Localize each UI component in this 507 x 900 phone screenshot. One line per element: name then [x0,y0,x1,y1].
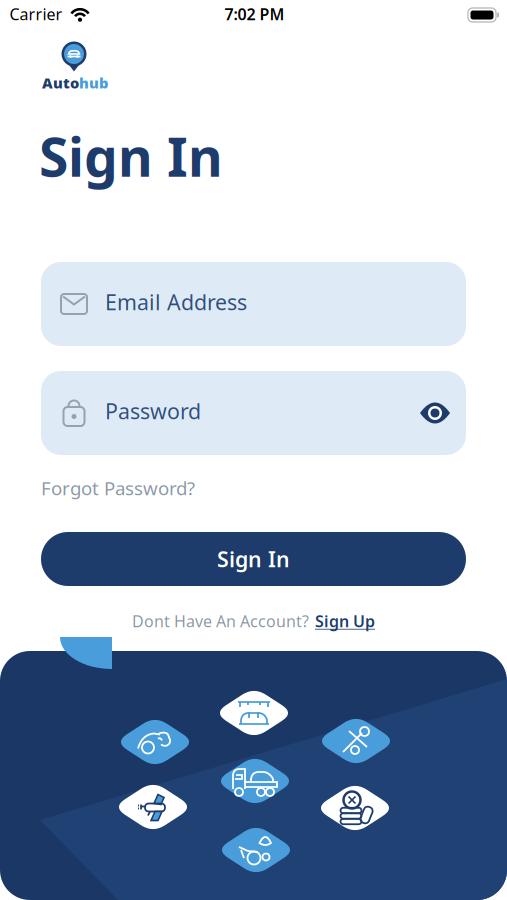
staticText: Sign Up [315,610,375,632]
staticText: Forgot Password? [41,476,195,500]
staticText: 7:02 PM [224,3,284,25]
staticText: Sign In [217,545,290,573]
staticText: Carrier [9,3,62,25]
staticText: Auto [42,73,79,92]
staticText: Dont Have An Account? [132,610,309,632]
staticText: Password [105,397,201,425]
button[interactable]: Email Address [41,262,466,346]
button[interactable]: Password [41,371,466,455]
button[interactable]: Show Password [413,391,457,435]
staticText: Email Address [105,288,247,316]
staticText: hub [79,73,108,92]
button[interactable]: Sign In [41,532,466,586]
staticText: Sign In [39,121,223,191]
button[interactable]: Sign Up [315,610,375,632]
button[interactable]: Forgot Password? [41,476,195,500]
